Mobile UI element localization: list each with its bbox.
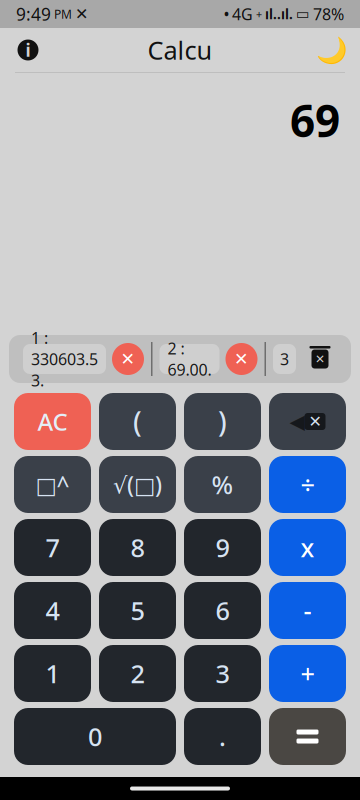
staticText: 3 bbox=[280, 348, 289, 370]
staticText: ✕ bbox=[315, 352, 325, 366]
staticText: ✕ bbox=[234, 349, 249, 369]
button[interactable]: 0 bbox=[14, 708, 176, 765]
button[interactable]: Delete entry bbox=[225, 343, 257, 375]
staticText: PM bbox=[54, 6, 72, 22]
staticText: 9:49 bbox=[16, 2, 51, 25]
button[interactable]: Info bbox=[6, 28, 50, 72]
button[interactable]: Delete entry bbox=[112, 343, 144, 375]
button[interactable]: 2 bbox=[99, 645, 176, 702]
staticText: ÷ bbox=[300, 468, 314, 501]
button[interactable]: Percent bbox=[184, 456, 261, 513]
button[interactable]: Clear history bbox=[303, 342, 337, 376]
staticText: x bbox=[300, 531, 314, 564]
button[interactable]: 4 bbox=[14, 582, 91, 639]
staticText: . bbox=[219, 720, 226, 753]
button[interactable]: 6 bbox=[184, 582, 261, 639]
staticText: ) bbox=[218, 403, 227, 440]
staticText: 2 : 69.00. bbox=[167, 338, 211, 380]
staticText: √(□) bbox=[113, 469, 162, 499]
button[interactable]: 7 bbox=[14, 519, 91, 576]
staticText: 1 bbox=[45, 657, 59, 690]
staticText: ( bbox=[133, 403, 142, 440]
button[interactable]: Multiply bbox=[269, 519, 346, 576]
button[interactable]: Minus bbox=[269, 582, 346, 639]
staticText: ✕ bbox=[75, 5, 88, 23]
staticText: 6 bbox=[215, 594, 229, 627]
staticText: + bbox=[256, 7, 262, 21]
button[interactable]: All clear bbox=[14, 393, 91, 450]
button[interactable]: Divide bbox=[269, 456, 346, 513]
staticText: ◀ bbox=[289, 410, 304, 433]
staticText: i bbox=[25, 38, 30, 61]
staticText: 78% bbox=[313, 3, 344, 25]
staticText: 1 : 330603.53. bbox=[31, 327, 98, 391]
staticText: 7 bbox=[45, 531, 59, 564]
button[interactable]: Decimal point bbox=[184, 708, 261, 765]
button[interactable]: 3 bbox=[184, 645, 261, 702]
staticText: Calcu bbox=[147, 33, 212, 67]
staticText: 0 bbox=[88, 720, 102, 753]
staticText: 2 bbox=[130, 657, 144, 690]
button[interactable]: Equals bbox=[269, 708, 346, 765]
button[interactable]: 2 : 69.00. bbox=[159, 344, 219, 374]
staticText: 🌙 bbox=[316, 35, 348, 64]
staticText: 9 bbox=[215, 531, 229, 564]
staticText: 69 bbox=[290, 91, 340, 149]
staticText: ✕ bbox=[120, 349, 135, 369]
staticText: ıl..ıl. bbox=[265, 5, 293, 23]
button[interactable]: 8 bbox=[99, 519, 176, 576]
staticText: 4 bbox=[45, 594, 59, 627]
staticText: 5 bbox=[130, 594, 144, 627]
button[interactable]: Backspace bbox=[269, 393, 346, 450]
button[interactable]: Plus bbox=[269, 645, 346, 702]
button[interactable]: Power bbox=[14, 456, 91, 513]
staticText: ▭ bbox=[296, 6, 310, 22]
button[interactable]: ) bbox=[184, 393, 261, 450]
staticText: AC bbox=[37, 406, 67, 437]
button[interactable]: 1 bbox=[14, 645, 91, 702]
staticText: □^ bbox=[35, 469, 69, 499]
staticText: 3 bbox=[215, 657, 229, 690]
button[interactable]: 3 bbox=[273, 344, 296, 374]
button[interactable]: 1 : 330603.53. bbox=[23, 344, 106, 374]
button[interactable]: Dark mode bbox=[310, 28, 354, 72]
button[interactable]: Square root bbox=[99, 456, 176, 513]
staticText: - bbox=[303, 594, 311, 627]
staticText: % bbox=[211, 468, 233, 501]
staticText: • bbox=[224, 5, 229, 23]
staticText: + bbox=[300, 657, 314, 690]
button[interactable]: 5 bbox=[99, 582, 176, 639]
staticText: 4G bbox=[232, 3, 253, 25]
button[interactable]: 9 bbox=[184, 519, 261, 576]
staticText: 8 bbox=[130, 531, 144, 564]
staticText: ✕ bbox=[308, 412, 321, 431]
button[interactable]: ( bbox=[99, 393, 176, 450]
